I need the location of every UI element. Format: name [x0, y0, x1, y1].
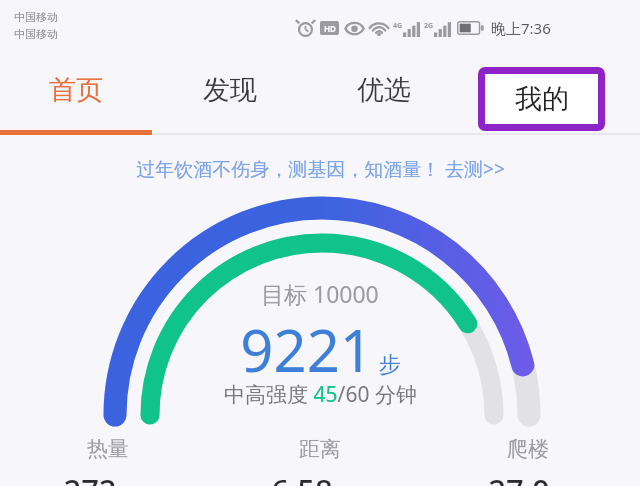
staticText: 距离 — [299, 436, 341, 462]
staticText: 4G — [393, 21, 403, 31]
staticText: 中国移动 — [14, 10, 58, 24]
staticText: 6.58公里 — [271, 469, 369, 486]
staticText: 27.0米 — [488, 469, 568, 486]
button[interactable]: 首页 — [14, 62, 138, 118]
staticText: 我的 — [513, 73, 567, 107]
staticText: 我的 — [515, 82, 569, 116]
button[interactable]: 距离 — [235, 436, 405, 486]
button[interactable]: 发现 — [168, 62, 292, 118]
staticText: 272千卡 — [63, 469, 153, 486]
button[interactable]: 我的 — [478, 62, 602, 118]
staticText: 首页 — [49, 73, 103, 107]
staticText: 中高强度 45/60 分钟 — [224, 380, 417, 409]
staticText: 爬楼 — [507, 436, 549, 462]
staticText: 晚上7:36 — [491, 18, 551, 38]
button[interactable]: 热量 — [23, 436, 193, 486]
staticText: HD — [324, 23, 336, 34]
staticText: 发现 — [203, 73, 257, 107]
staticText: 过年饮酒不伤身，测基因，知酒量！ 去测>> — [136, 156, 505, 182]
staticText: 9221 步 — [240, 310, 401, 389]
staticText: 优选 — [357, 73, 411, 107]
staticText: 中国移动 — [14, 27, 58, 41]
staticText: 目标 10000 — [261, 278, 379, 309]
button[interactable]: 过年饮酒不伤身，测基因，知酒量！ 去测>> — [0, 150, 640, 188]
staticText: 热量 — [87, 436, 129, 462]
button[interactable]: 爬楼 — [443, 436, 613, 486]
button[interactable]: 优选 — [322, 62, 446, 118]
staticText: 2G — [424, 21, 434, 31]
